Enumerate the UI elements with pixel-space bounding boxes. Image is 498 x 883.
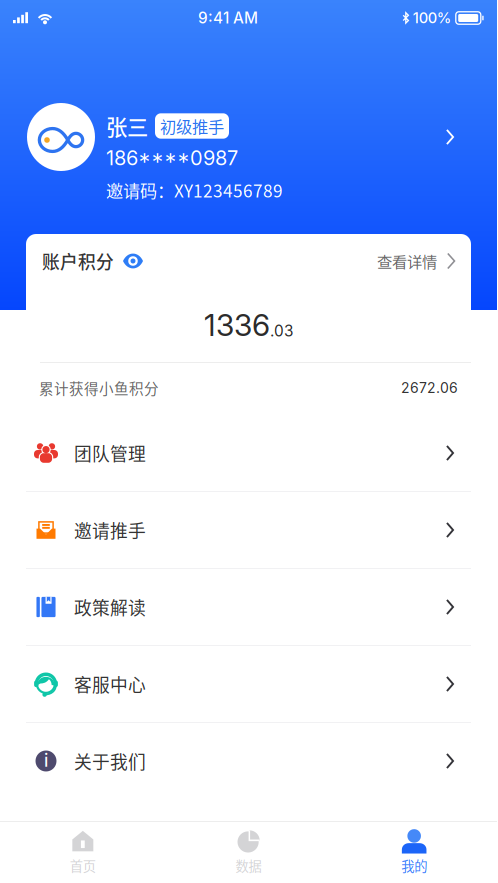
- staticText: 初级推手: [160, 114, 224, 138]
- staticText: 张三: [106, 111, 148, 141]
- button[interactable]: 团队管理: [0, 415, 497, 491]
- staticText: 关于我们: [74, 748, 146, 774]
- button[interactable]: 账户积分: [26, 234, 471, 288]
- button[interactable]: i: [0, 723, 497, 799]
- staticText: 累计获得小鱼积分: [39, 377, 159, 398]
- staticText: i: [44, 750, 48, 771]
- staticText: 团队管理: [74, 440, 146, 466]
- staticText: 账户积分: [42, 248, 114, 274]
- button[interactable]: 张三: [0, 89, 497, 185]
- button[interactable]: 邀请推手: [0, 492, 497, 568]
- staticText: 数据: [235, 856, 261, 875]
- staticText: .03: [270, 322, 293, 340]
- staticText: 首页: [70, 856, 96, 875]
- staticText: 邀请推手: [74, 517, 146, 543]
- staticText: 邀请码：XY123456789: [106, 177, 283, 202]
- button[interactable]: 数据: [166, 822, 331, 883]
- staticText: 查看详情: [377, 250, 437, 272]
- staticText: 100%: [413, 9, 452, 27]
- button[interactable]: 我的: [331, 822, 497, 883]
- button[interactable]: 客服中心: [0, 646, 497, 722]
- staticText: 2672.06: [401, 379, 458, 396]
- button[interactable]: 政策解读: [0, 569, 497, 645]
- staticText: 客服中心: [74, 671, 146, 697]
- staticText: 我的: [401, 856, 427, 875]
- staticText: 186****0987: [106, 146, 238, 170]
- button[interactable]: 首页: [0, 822, 166, 883]
- staticText: 9:41 AM: [198, 9, 258, 27]
- staticText: 政策解读: [74, 594, 146, 620]
- staticText: 1336: [204, 307, 270, 343]
